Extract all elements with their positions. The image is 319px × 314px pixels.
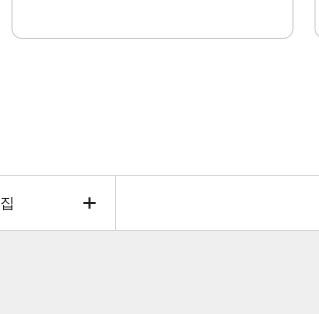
staticText: 집	[0, 194, 15, 212]
button[interactable]: Card	[315, 0, 319, 38]
button[interactable]: 집	[0, 176, 115, 230]
